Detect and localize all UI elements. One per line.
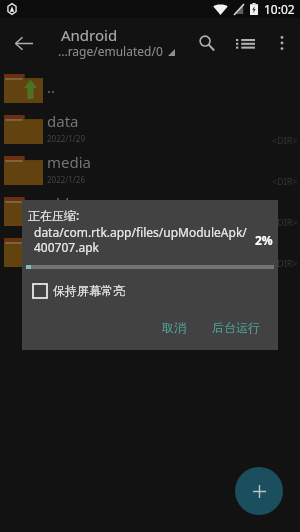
staticText: 取消 (162, 320, 186, 335)
staticText: 10:02 (264, 1, 295, 17)
staticText: <DIR> (272, 134, 298, 146)
staticText: 2022/1/29 (47, 133, 85, 144)
staticText: <DIR> (272, 257, 298, 269)
staticText: 正在压缩: (28, 207, 80, 223)
staticText: <DIR> (272, 216, 298, 228)
staticText: misc (47, 234, 80, 254)
staticText: ...rage/emulated/0 (58, 43, 163, 59)
staticText: 2022/1/26 (47, 256, 85, 267)
staticText: media (47, 152, 91, 172)
staticText: data/com.rtk.app/files/upModuleApk/40070… (34, 224, 260, 255)
button[interactable]: More options (266, 27, 298, 59)
button[interactable]: 保持屏幕常亮 (31, 281, 127, 300)
staticText: 2% (255, 232, 273, 248)
button[interactable]: obb (0, 191, 300, 232)
button[interactable]: .. (0, 68, 300, 109)
button[interactable]: View list (227, 25, 263, 61)
button[interactable]: 取消 (156, 315, 192, 340)
button[interactable]: 后台运行 (206, 315, 266, 340)
button[interactable]: media (0, 150, 300, 191)
button[interactable]: Search (189, 25, 225, 61)
staticText: <DIR> (272, 175, 298, 187)
staticText: Android (61, 25, 118, 45)
staticText: 后台运行 (212, 320, 260, 335)
button[interactable]: misc (0, 232, 300, 273)
staticText: 2022/1/26 (47, 215, 85, 226)
button[interactable]: data (0, 109, 300, 150)
staticText: 保持屏幕常亮 (53, 283, 125, 298)
staticText: data (47, 111, 79, 131)
staticText: 2022/1/26 (47, 174, 85, 185)
staticText: .. (47, 77, 56, 97)
staticText: obb (47, 193, 75, 213)
button[interactable]: Back (6, 25, 42, 61)
button[interactable]: Add (235, 467, 283, 515)
